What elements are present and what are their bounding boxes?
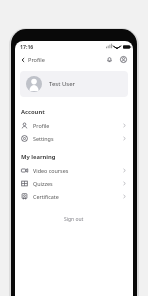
staticText: My learning bbox=[21, 153, 56, 161]
button[interactable]: Profile bbox=[15, 119, 133, 132]
staticText: Video courses bbox=[33, 167, 69, 174]
button[interactable]: Account bbox=[118, 54, 129, 65]
button[interactable]: Quizzes bbox=[15, 177, 133, 190]
staticText: Profile bbox=[33, 122, 50, 129]
button[interactable]: Video courses bbox=[15, 164, 133, 177]
staticText: Profile bbox=[28, 56, 45, 64]
staticText: Certificate bbox=[33, 193, 59, 200]
button[interactable]: Notifications bbox=[104, 54, 115, 65]
staticText: Sign out bbox=[64, 216, 84, 223]
button[interactable]: Sign out bbox=[15, 211, 133, 228]
staticText: Settings bbox=[33, 135, 54, 142]
staticText: Test User bbox=[49, 80, 76, 88]
button[interactable]: Certificate bbox=[15, 190, 133, 203]
button[interactable]: Test User bbox=[20, 71, 128, 97]
button[interactable]: Settings bbox=[15, 132, 133, 145]
staticText: Quizzes bbox=[33, 180, 53, 187]
button[interactable]: Back bbox=[19, 54, 46, 66]
staticText: Account bbox=[21, 108, 45, 116]
staticText: 17:16 bbox=[20, 43, 34, 50]
